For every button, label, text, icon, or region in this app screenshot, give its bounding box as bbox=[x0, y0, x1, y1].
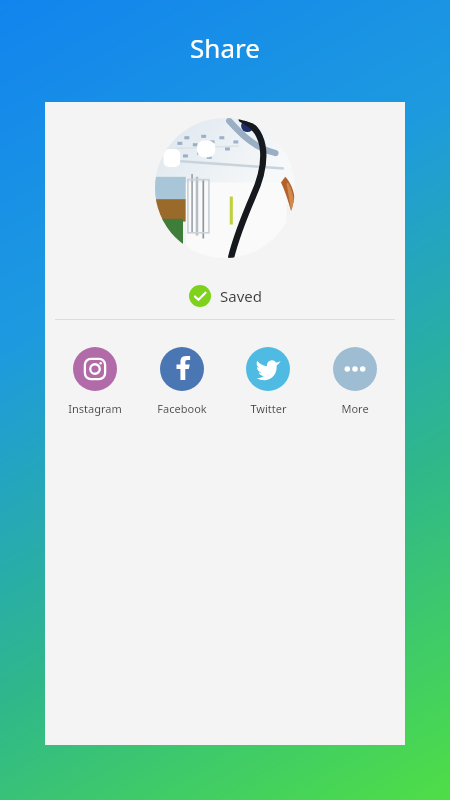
button[interactable]: Facebook bbox=[146, 347, 218, 416]
staticText: Twitter bbox=[250, 401, 287, 416]
staticText: Share bbox=[190, 30, 260, 65]
staticText: Facebook bbox=[157, 401, 207, 416]
button[interactable]: Instagram bbox=[59, 347, 131, 416]
button[interactable]: Twitter bbox=[232, 347, 304, 416]
staticText: More bbox=[341, 401, 369, 416]
staticText: Saved bbox=[220, 286, 262, 306]
button[interactable]: More bbox=[319, 347, 391, 416]
staticText: Instagram bbox=[68, 401, 122, 416]
